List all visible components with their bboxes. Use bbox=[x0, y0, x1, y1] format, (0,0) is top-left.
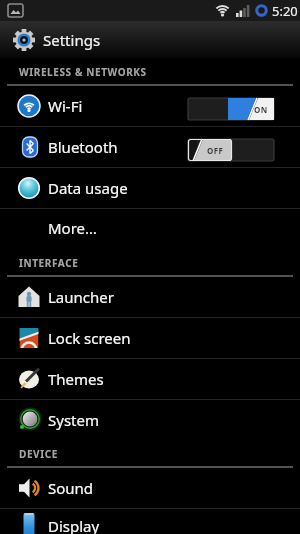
staticText: Bluetooth bbox=[48, 137, 118, 157]
button[interactable]: ON bbox=[188, 98, 274, 120]
staticText: WIRELESS & NETWORKS bbox=[19, 65, 147, 79]
staticText: Sound bbox=[48, 478, 94, 498]
staticText: INTERFACE bbox=[19, 256, 79, 270]
button[interactable]: Lock screen bbox=[0, 318, 300, 358]
button[interactable]: Display bbox=[0, 509, 300, 534]
button[interactable]: Wi-Fi bbox=[0, 86, 300, 126]
staticText: Data usage bbox=[48, 178, 128, 198]
staticText: Themes bbox=[48, 369, 104, 389]
staticText: DEVICE bbox=[19, 447, 58, 461]
staticText: OFF bbox=[207, 145, 224, 156]
staticText: Wi-Fi bbox=[48, 96, 83, 116]
staticText: 5:20 bbox=[272, 2, 298, 20]
staticText: Display bbox=[48, 516, 100, 534]
staticText: System bbox=[48, 410, 99, 430]
button[interactable]: OFF bbox=[188, 139, 274, 161]
staticText: ON bbox=[254, 104, 268, 115]
button[interactable]: Data usage bbox=[0, 168, 300, 208]
staticText: Settings bbox=[43, 30, 101, 50]
button[interactable]: Themes bbox=[0, 359, 300, 399]
button[interactable]: System bbox=[0, 400, 300, 440]
button[interactable]: More… bbox=[0, 209, 300, 247]
staticText: More… bbox=[48, 218, 97, 238]
button[interactable]: Bluetooth bbox=[0, 127, 300, 167]
button[interactable]: Launcher bbox=[0, 277, 300, 317]
button[interactable]: Sound bbox=[0, 468, 300, 508]
staticText: Lock screen bbox=[48, 328, 131, 348]
staticText: Launcher bbox=[48, 287, 114, 307]
